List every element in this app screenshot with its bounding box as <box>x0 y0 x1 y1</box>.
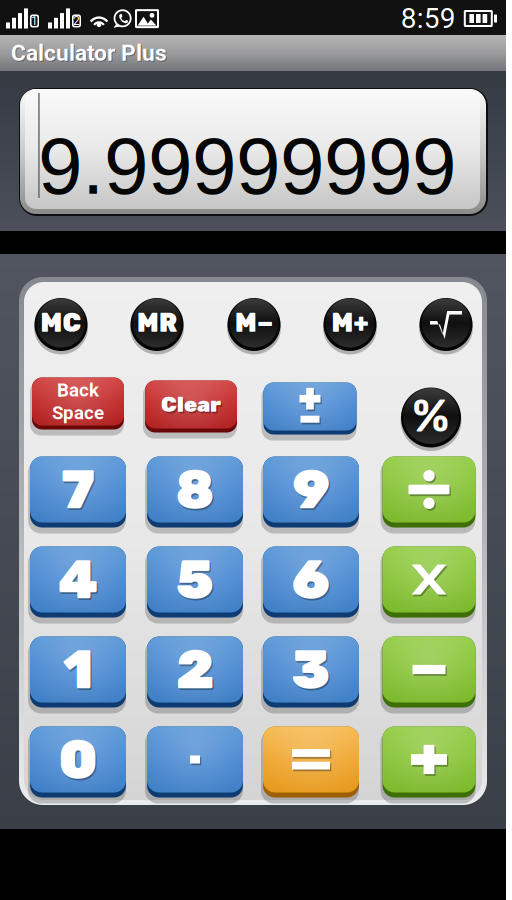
staticText: 3 <box>293 639 332 704</box>
button[interactable]: 2 <box>145 635 245 712</box>
button[interactable]: 1 <box>28 635 128 712</box>
staticText: 5 <box>176 547 214 612</box>
button[interactable]: 8 <box>145 455 245 532</box>
staticText: 4 <box>59 549 99 614</box>
button[interactable]: Memory add <box>320 294 379 355</box>
staticText: 1 <box>31 14 38 28</box>
button[interactable]: 9 <box>261 455 361 532</box>
staticText: 6 <box>292 547 330 612</box>
staticText: MR <box>137 308 177 338</box>
staticText: 0 <box>60 729 99 794</box>
staticText: 1 <box>63 637 93 702</box>
staticText: 2 <box>73 14 80 28</box>
staticText: 5 <box>177 549 215 614</box>
staticText: 2 <box>177 639 215 704</box>
button[interactable]: Decimal point <box>145 725 245 802</box>
staticText: 4 <box>58 547 98 612</box>
staticText: MC <box>40 308 81 338</box>
button[interactable]: 7 <box>28 455 128 532</box>
staticText: 9 <box>292 457 329 522</box>
staticText: 8:59 <box>401 2 456 35</box>
staticText: 7 <box>61 457 95 522</box>
button[interactable]: Plus <box>380 725 477 802</box>
staticText: Clear <box>161 392 221 417</box>
button[interactable]: Square root <box>416 294 475 355</box>
button[interactable]: 3 <box>261 635 361 712</box>
staticText: 9.99999999 <box>38 121 456 211</box>
button[interactable]: 0 <box>28 725 128 802</box>
button[interactable]: 6 <box>261 545 361 622</box>
button[interactable]: Memory recall <box>127 294 186 355</box>
staticText: 3 <box>291 637 330 702</box>
button[interactable]: Minus <box>380 635 477 712</box>
button[interactable]: Percent <box>398 383 464 451</box>
staticText: 0 <box>58 727 97 792</box>
staticText: 8 <box>177 459 216 524</box>
staticText: Calculator Plus <box>12 41 168 67</box>
staticText: M+ <box>331 308 368 338</box>
button[interactable]: Memory clear <box>31 294 90 355</box>
staticText: 6 <box>293 549 331 614</box>
staticText: Back <box>57 379 99 401</box>
staticText: Clear <box>162 394 222 419</box>
button[interactable]: 4 <box>28 545 128 622</box>
button[interactable]: Clear <box>143 379 239 437</box>
button[interactable]: Plus minus <box>261 381 358 439</box>
staticText: 1 <box>64 639 94 704</box>
staticText: 8 <box>175 457 214 522</box>
button[interactable]: Equals <box>261 725 361 802</box>
staticText: 7 <box>62 459 96 524</box>
staticText: 9 <box>294 459 331 524</box>
button[interactable]: Divide <box>380 455 477 532</box>
button[interactable]: 5 <box>145 545 245 622</box>
staticText: M− <box>235 308 273 338</box>
button[interactable]: Memory subtract <box>224 294 283 355</box>
staticText: Space <box>52 402 104 424</box>
staticText: 2 <box>176 637 214 702</box>
staticText: % <box>412 389 449 443</box>
staticText: Calculator Plus <box>11 40 167 66</box>
button[interactable]: Multiply <box>380 545 477 622</box>
button[interactable]: Backspace <box>30 376 126 434</box>
